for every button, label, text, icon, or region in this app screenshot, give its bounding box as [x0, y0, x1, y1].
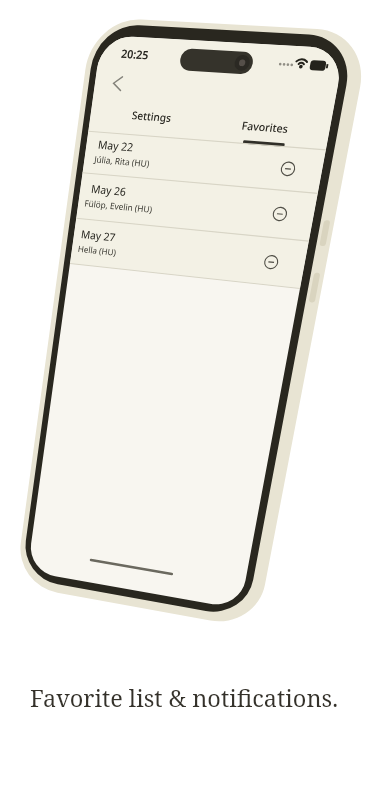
button[interactable] — [76, 223, 306, 267]
button[interactable] — [88, 132, 318, 176]
button[interactable] — [118, 103, 186, 131]
button[interactable] — [108, 70, 132, 98]
staticText: Favorite list & notifications. — [30, 682, 339, 714]
button[interactable] — [233, 113, 303, 143]
button[interactable] — [83, 177, 313, 221]
